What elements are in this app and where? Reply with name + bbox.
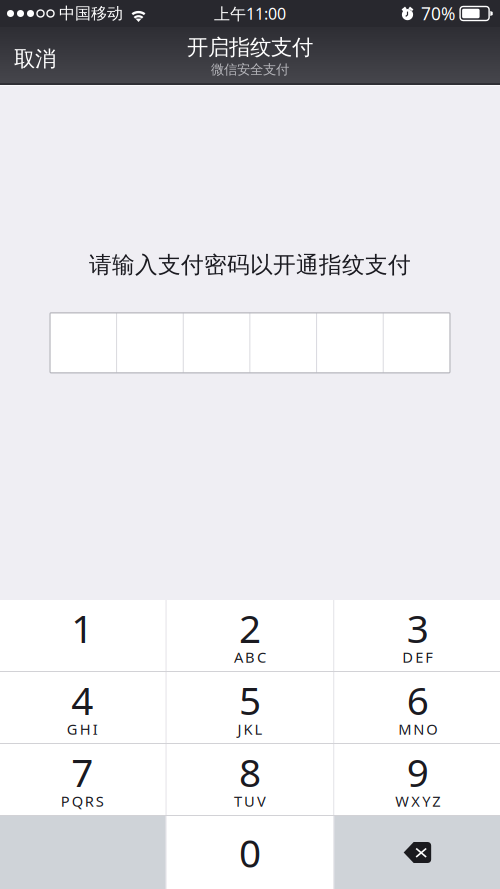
staticText: 7 [71, 746, 93, 798]
button[interactable]: 7 [0, 744, 166, 815]
staticText: 8 [239, 746, 261, 798]
staticText: WXYZ [395, 791, 440, 811]
staticText: 中国移动 [59, 4, 123, 23]
button[interactable]: 1 [0, 600, 166, 671]
button[interactable]: 6 [334, 672, 500, 743]
staticText: 9 [407, 746, 429, 798]
button[interactable]: 9 [334, 744, 500, 815]
staticText: 开启指纹支付 [187, 34, 313, 60]
staticText: 上午11:00 [214, 3, 286, 24]
button[interactable]: 5 [167, 672, 333, 743]
staticText: 微信安全支付 [211, 61, 289, 78]
button[interactable]: Delete [334, 816, 500, 889]
staticText: GHI [67, 719, 98, 739]
staticText: 3 [407, 602, 429, 654]
staticText: 2 [239, 602, 261, 654]
staticText: 取消 [14, 46, 56, 72]
staticText: MNO [398, 719, 437, 739]
staticText: JKL [237, 719, 262, 739]
button[interactable]: 0 [167, 816, 333, 889]
staticText: 0 [239, 827, 261, 878]
staticText: ABC [234, 647, 266, 667]
button[interactable]: 4 [0, 672, 166, 743]
staticText: DEF [402, 647, 433, 667]
staticText: 5 [239, 674, 261, 726]
staticText: 1 [71, 602, 93, 654]
staticText: TUV [234, 791, 266, 811]
button[interactable]: 3 [334, 600, 500, 671]
button[interactable]: 2 [167, 600, 333, 671]
staticText: 请输入支付密码以开通指纹支付 [89, 251, 411, 279]
staticText: PQRS [61, 791, 104, 811]
staticText: 6 [407, 674, 429, 726]
button[interactable]: 取消 [0, 37, 84, 81]
button[interactable]: 8 [167, 744, 333, 815]
staticText: 4 [71, 674, 93, 726]
staticText: 70% [421, 2, 455, 25]
